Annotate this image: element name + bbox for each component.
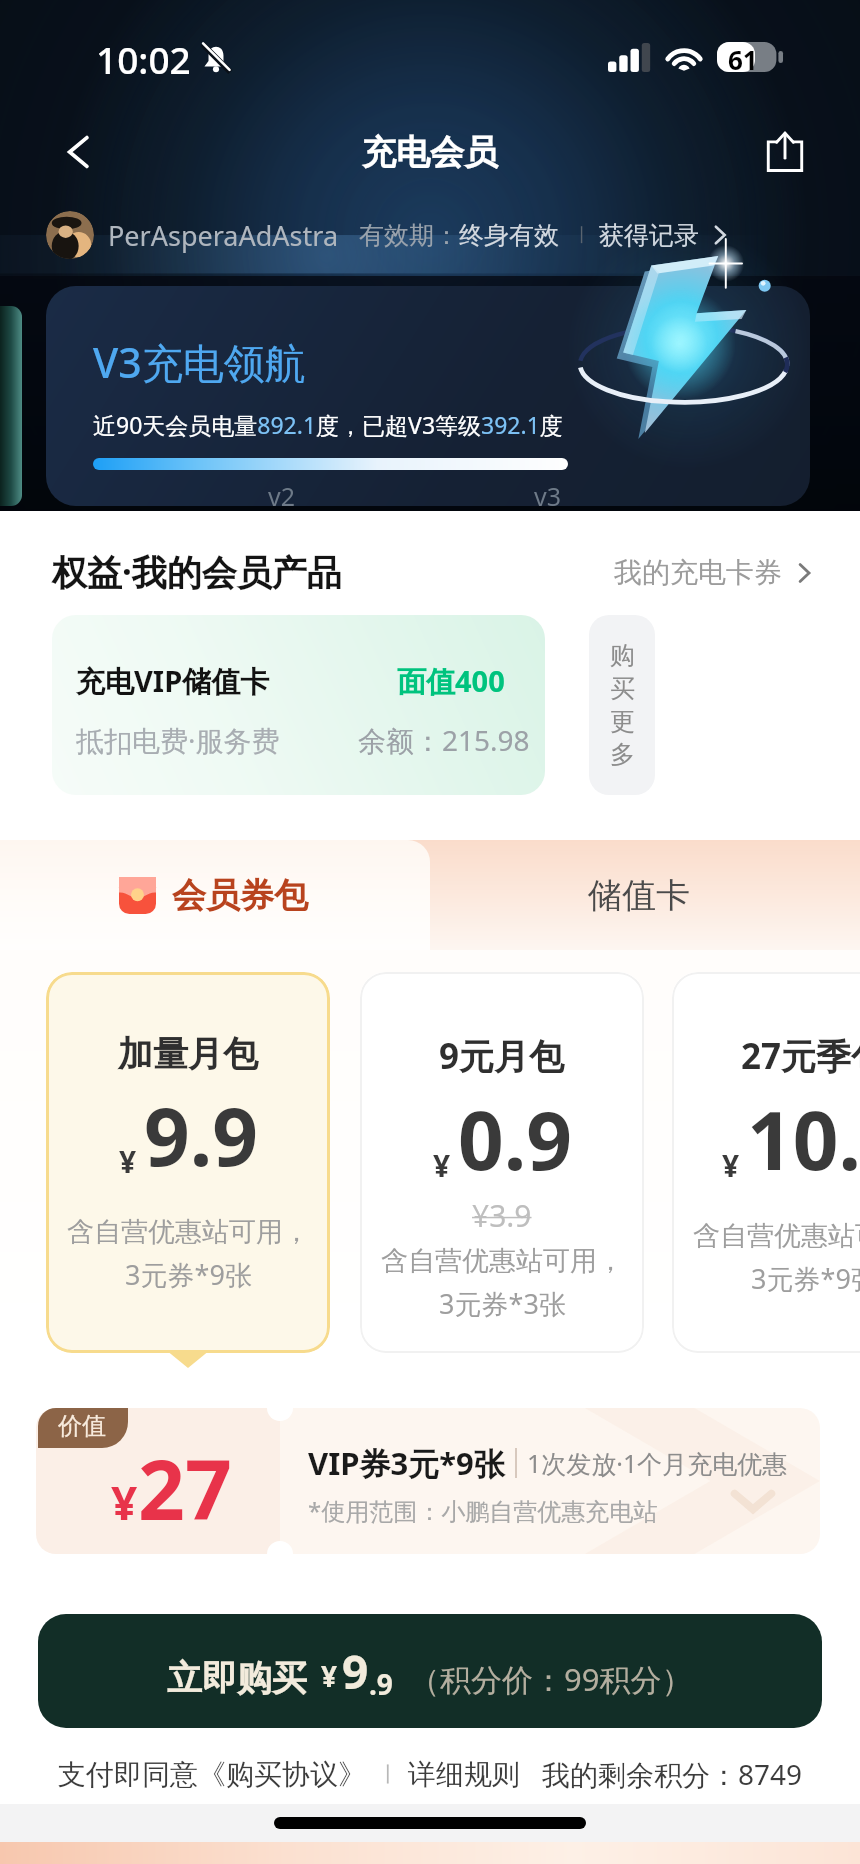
button[interactable]: 我的充电卡券	[614, 555, 818, 590]
staticText: 加量月包	[118, 1032, 258, 1076]
staticText: .9	[369, 1665, 393, 1703]
button[interactable]: 充电VIP储值卡	[52, 615, 545, 795]
staticText: V3充电领航	[93, 334, 306, 390]
staticText: 10:02	[96, 34, 191, 84]
staticText: 含自营优惠站可用， 3元券*9张	[693, 1219, 860, 1297]
staticText: 余额：215.98	[358, 721, 530, 759]
staticText: 充电会员	[362, 131, 498, 174]
button[interactable]: Back	[48, 121, 110, 183]
staticText: ¥	[111, 1471, 138, 1534]
staticText: v3	[534, 479, 562, 506]
button[interactable]: 购 买 更 多	[589, 615, 655, 795]
staticText: 会员券包	[172, 874, 308, 917]
staticText: 详细规则	[408, 1757, 520, 1792]
button[interactable]: Share	[754, 121, 816, 183]
button[interactable]: ¥	[36, 1408, 820, 1554]
staticText: 27元季包	[741, 1032, 860, 1080]
staticText: ¥	[722, 1145, 740, 1186]
staticText: 丨	[573, 224, 591, 247]
staticText: PerAsperaAdAstra	[108, 217, 339, 254]
button[interactable]: 立即购买	[38, 1614, 822, 1728]
button[interactable]: V3充电领航	[46, 286, 810, 506]
staticText: 近90天会员电量892.1度，已超V3等级392.1度	[93, 409, 563, 440]
staticText: ¥3.9	[472, 1195, 532, 1236]
button[interactable]: 9元月包	[360, 972, 644, 1353]
button[interactable]: 储值卡	[430, 840, 860, 950]
staticText: （积分价：99积分）	[409, 1658, 693, 1700]
staticText: 9	[342, 1640, 369, 1703]
staticText: 储值卡	[588, 874, 690, 917]
staticText: v2	[268, 479, 296, 506]
staticText: VIP券3元*9张	[308, 1442, 505, 1484]
staticText: 充电VIP储值卡	[76, 661, 270, 701]
staticText: 终身有效	[459, 220, 559, 251]
button[interactable]: 27元季包	[672, 972, 860, 1353]
staticText: 9.9	[144, 1080, 258, 1189]
staticText: 立即购买	[167, 1656, 307, 1700]
staticText: 含自营优惠站可用， 3元券*3张	[381, 1244, 624, 1322]
staticText: 我的剩余积分：8749	[542, 1755, 803, 1793]
staticText: ¥	[321, 1657, 338, 1695]
staticText: 1次发放·1个月充电优惠	[527, 1446, 788, 1480]
staticText: 丨	[378, 1762, 398, 1787]
staticText: 含自营优惠站可用， 3元券*9张	[67, 1215, 310, 1293]
button[interactable]: PerAsperaAdAstra	[46, 202, 860, 268]
staticText: 面值400	[397, 661, 505, 701]
staticText: 权益·我的会员产品	[52, 548, 342, 596]
staticText: 获得记录	[599, 220, 699, 251]
staticText: *使用范围：小鹏自营优惠充电站	[308, 1494, 658, 1527]
staticText: 27	[138, 1432, 232, 1544]
staticText: ¥	[119, 1141, 137, 1182]
staticText: 10.9	[747, 1084, 860, 1193]
staticText: 9元月包	[439, 1032, 565, 1080]
staticText: ¥	[433, 1145, 451, 1186]
staticText: 有效期：	[359, 220, 459, 251]
staticText: 抵扣电费·服务费	[76, 721, 280, 759]
staticText: 0.9	[458, 1084, 572, 1193]
button[interactable]: 会员券包	[0, 840, 430, 950]
staticText: 价值	[58, 1411, 106, 1441]
button[interactable]: 加量月包	[46, 972, 330, 1353]
staticText: 我的充电卡券	[614, 555, 782, 590]
staticText: 支付即同意《购买协议》	[58, 1757, 366, 1792]
staticText: 购 买 更 多	[610, 640, 635, 770]
staticText: 61	[728, 42, 758, 72]
